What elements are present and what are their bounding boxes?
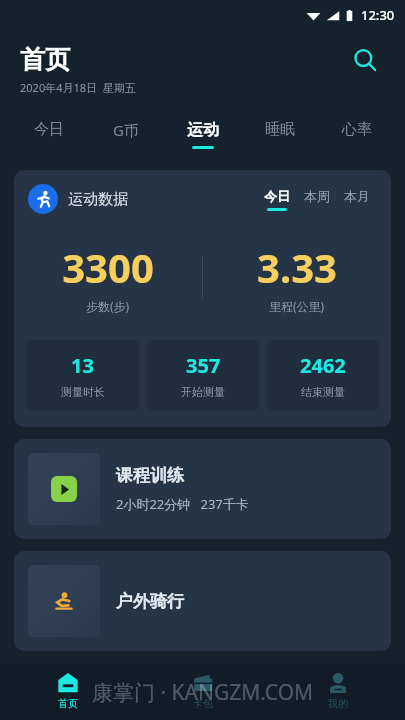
staticText: 12:30: [361, 6, 395, 24]
staticText: 2462: [300, 352, 346, 379]
button[interactable]: 我的: [270, 664, 405, 720]
staticText: 2小时22分钟 237千卡: [116, 495, 249, 513]
button[interactable]: 课程训练: [14, 439, 391, 539]
staticText: 里程(公里): [269, 298, 325, 314]
button[interactable]: 睡眠: [241, 108, 318, 160]
staticText: 2020年4月18日 星期五: [20, 80, 136, 95]
button[interactable]: G币: [87, 108, 164, 160]
button[interactable]: 今日: [257, 188, 297, 211]
staticText: 首页: [58, 697, 78, 710]
staticText: 结束测量: [301, 385, 345, 399]
button[interactable]: 卡包: [135, 664, 270, 720]
staticText: 本周: [304, 188, 330, 204]
staticText: 课程训练: [116, 465, 184, 486]
button[interactable]: 首页: [0, 664, 135, 720]
staticText: 测量时长: [61, 385, 105, 399]
staticText: 开始测量: [181, 385, 225, 399]
staticText: 今日: [34, 120, 64, 139]
staticText: 3.33: [257, 240, 337, 294]
button[interactable]: 户外骑行: [14, 551, 391, 651]
button[interactable]: 357: [147, 340, 259, 411]
staticText: 心率: [342, 120, 372, 139]
button[interactable]: 运动数据: [14, 170, 391, 427]
staticText: 户外骑行: [116, 591, 184, 612]
staticText: 运动: [187, 120, 219, 140]
staticText: G币: [113, 120, 139, 140]
staticText: 睡眠: [265, 120, 295, 139]
button[interactable]: 本月: [337, 188, 377, 211]
button[interactable]: 2462: [267, 340, 379, 411]
staticText: 卡包: [193, 697, 213, 710]
button[interactable]: 运动: [164, 108, 241, 160]
button[interactable]: 本周: [297, 188, 337, 211]
staticText: 我的: [328, 697, 348, 710]
button[interactable]: 13: [26, 340, 139, 411]
staticText: 运动数据: [68, 190, 128, 209]
staticText: 3300: [62, 240, 154, 294]
button[interactable]: 今日: [10, 108, 87, 160]
staticText: 本月: [344, 188, 370, 204]
staticText: 步数(步): [86, 298, 130, 314]
staticText: 今日: [264, 188, 290, 204]
button[interactable]: Search: [343, 38, 387, 82]
staticText: 13: [71, 352, 94, 379]
staticText: 康掌门 · KANGZM.COM: [92, 678, 314, 707]
button[interactable]: 心率: [318, 108, 395, 160]
staticText: 357: [186, 352, 221, 379]
staticText: 首页: [20, 44, 70, 75]
